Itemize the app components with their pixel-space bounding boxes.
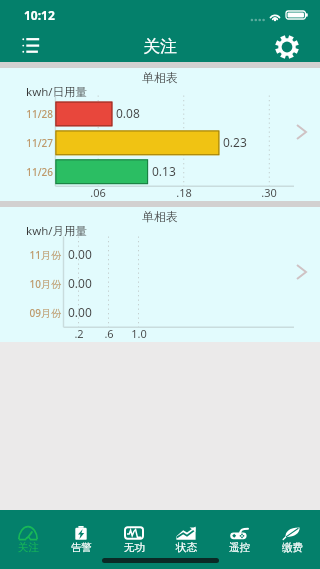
staticText: 09月份 [5,306,61,320]
button[interactable]: 遥控 [214,526,264,569]
staticText: 缴费 [282,541,303,554]
button[interactable]: 缴费 [267,526,317,569]
staticText: 11/28 [0,107,53,121]
staticText: 关注 [143,36,177,57]
staticText: 单相表 [142,70,178,85]
staticText: 遥控 [229,541,250,554]
staticText: kwh/月用量 [26,223,88,239]
staticText: 告警 [71,541,92,554]
staticText: 0.13 [152,163,176,179]
staticText: 10月份 [5,277,61,291]
staticText: 10:12 [24,7,55,23]
button[interactable]: 单相表 [0,68,320,201]
staticText: .30 [249,185,289,200]
staticText: 0.00 [68,304,92,320]
staticText: 0.23 [223,134,247,150]
staticText: 无功 [124,541,145,554]
staticText: 11/26 [0,165,53,179]
staticText: kwh/日用量 [26,84,88,100]
staticText: 0.00 [68,275,92,291]
button[interactable]: 关注 [3,526,53,569]
staticText: .2 [59,326,99,341]
button[interactable]: Settings [270,28,306,60]
staticText: 1.0 [119,326,159,341]
staticText: 0.08 [116,105,140,121]
staticText: .06 [78,185,118,200]
staticText: .18 [164,185,204,200]
staticText: 0.00 [68,246,92,262]
button[interactable]: 无功 [109,526,159,569]
staticText: 关注 [18,541,39,554]
staticText: 11月份 [5,248,61,262]
button[interactable]: 单相表 [0,207,320,342]
staticText: 11/27 [0,136,53,150]
button[interactable]: Menu [14,28,50,60]
button[interactable]: 告警 [56,526,106,569]
staticText: 单相表 [142,209,178,224]
staticText: 状态 [176,541,197,554]
staticText: .6 [89,326,129,341]
button[interactable]: 状态 [161,526,211,569]
